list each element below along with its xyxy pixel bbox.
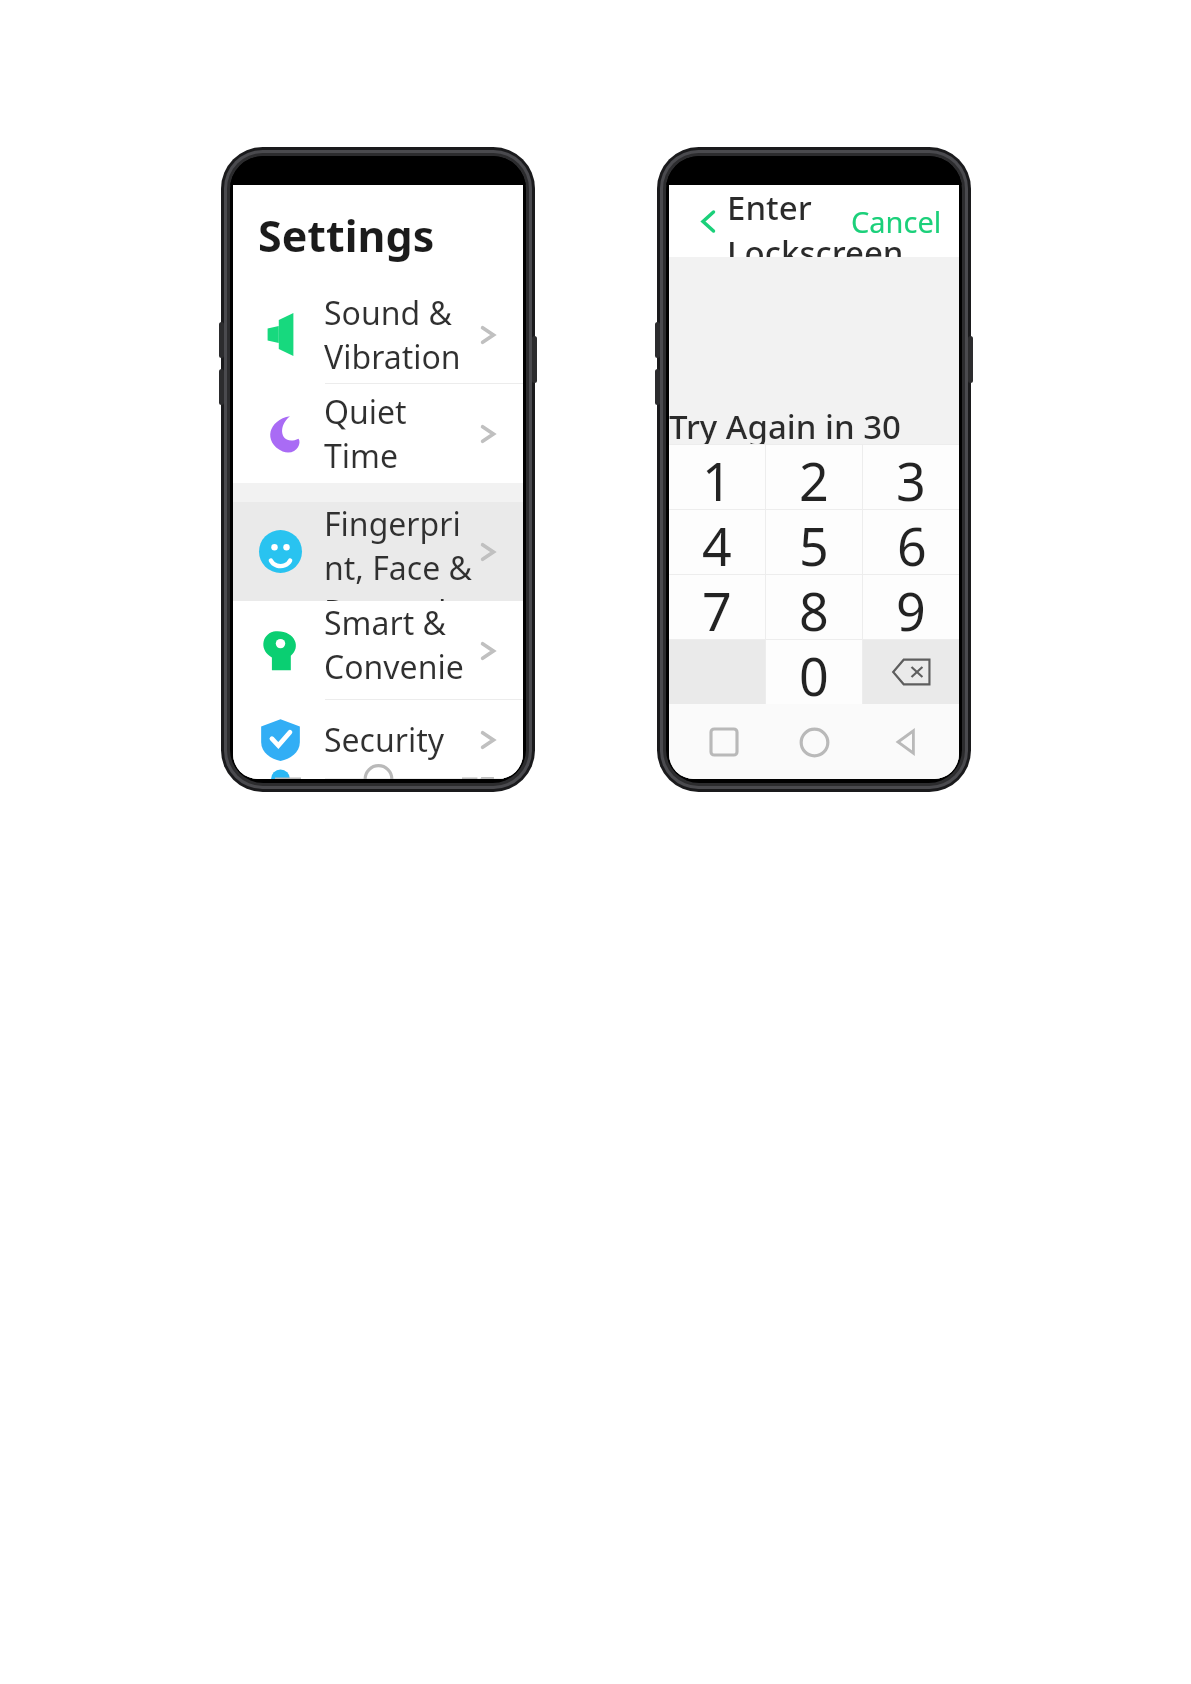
button[interactable]: Smart & Convenient — [233, 601, 523, 700]
staticText: Security — [324, 718, 473, 762]
staticText: 0 — [799, 640, 829, 704]
staticText: Cancel — [851, 202, 942, 241]
staticText: 9 — [896, 575, 926, 639]
staticText: Enter Lockscreen Passcode — [727, 185, 959, 257]
button[interactable]: 9 — [863, 575, 959, 639]
button[interactable]: 4 — [669, 510, 765, 574]
button[interactable]: Fingerprint, Face & Passcode — [233, 502, 523, 601]
staticText: Smart & Convenient — [324, 601, 473, 700]
button[interactable]: Quiet Time — [233, 384, 523, 483]
button[interactable]: Back — [683, 196, 733, 246]
button[interactable]: Back — [869, 706, 941, 778]
staticText: 3 — [896, 445, 926, 509]
button[interactable]: 8 — [766, 575, 862, 639]
staticText: 6 — [897, 510, 927, 574]
staticText: 8 — [799, 575, 829, 639]
staticText: Sound & Vibration — [324, 291, 473, 379]
staticText: 7 — [702, 575, 732, 639]
button[interactable]: Recents — [688, 706, 760, 778]
button[interactable]: 3 — [863, 445, 959, 509]
staticText: Fingerprint, Face & Passcode — [324, 502, 473, 601]
staticText: Try Again in 30 Seconds — [669, 404, 959, 444]
button[interactable]: 6 — [863, 510, 959, 574]
staticText: 4 — [702, 510, 732, 574]
button[interactable]: Home — [778, 706, 850, 778]
button[interactable]: 5 — [766, 510, 862, 574]
staticText: 5 — [799, 510, 829, 574]
button[interactable]: 1 — [669, 445, 765, 509]
button[interactable]: 7 — [669, 575, 765, 639]
button[interactable]: Security — [233, 700, 523, 779]
button[interactable]: Delete — [863, 640, 959, 704]
staticText: 1 — [702, 445, 732, 509]
staticText: 2 — [799, 445, 829, 509]
button[interactable]: Cancel — [851, 202, 942, 241]
staticText: Quiet Time — [324, 390, 473, 478]
staticText: Settings — [258, 206, 435, 265]
button[interactable]: 2 — [766, 445, 862, 509]
button[interactable]: 0 — [766, 640, 862, 704]
button[interactable]: Sound & Vibration — [233, 285, 523, 384]
